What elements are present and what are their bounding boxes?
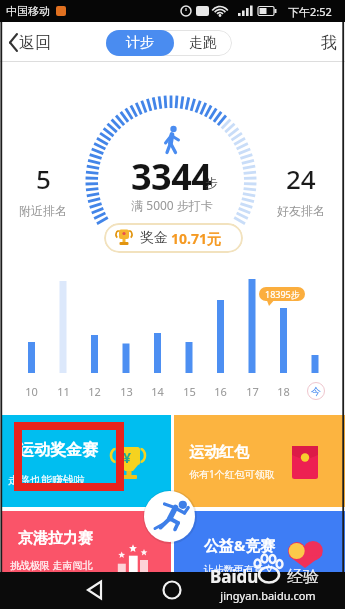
staticText: 11 <box>57 384 70 399</box>
button[interactable] <box>144 491 195 542</box>
button[interactable]: 运动奖金赛 <box>2 415 171 507</box>
staticText: 走跑 <box>189 34 217 52</box>
button[interactable]: 计步 <box>106 30 174 56</box>
staticText: 15 <box>183 384 196 399</box>
staticText: 让步数更有意义 <box>204 563 274 576</box>
staticText: 10 <box>25 384 38 399</box>
staticText: 16 <box>214 384 227 399</box>
staticText: 挑战极限 走南闯北 <box>10 558 93 572</box>
button[interactable]: 奖金 <box>104 223 243 253</box>
staticText: 17 <box>246 384 259 399</box>
button[interactable] <box>152 576 192 604</box>
staticText: 走路也能赚钱啦 <box>8 473 85 487</box>
staticText: 10.71元 <box>171 229 221 248</box>
staticText: 步 <box>205 175 218 191</box>
staticText: 中国移动 <box>6 4 50 18</box>
staticText: jingyan.baidu.com <box>220 588 316 603</box>
button[interactable] <box>229 576 269 604</box>
staticText: 满 5000 步打卡 <box>131 197 213 213</box>
button[interactable]: 京港拉力赛 <box>2 511 171 572</box>
button[interactable]: 公益&竞赛 <box>174 511 345 572</box>
button[interactable]: 返回 <box>2 26 72 60</box>
staticText: 24 <box>286 161 316 196</box>
staticText: Baidu <box>210 565 259 588</box>
button[interactable]: 运动红包 <box>174 415 345 507</box>
staticText: 3344 <box>131 152 212 201</box>
staticText: 附近排名 <box>19 203 67 218</box>
staticText: 18395步 <box>265 288 300 300</box>
staticText: 12 <box>88 384 101 399</box>
staticText: 运动红包 <box>189 443 249 462</box>
staticText: 13 <box>120 384 133 399</box>
staticText: 好友排名 <box>277 203 325 218</box>
staticText: 14 <box>151 384 164 399</box>
staticText: 公益&竞赛 <box>204 535 276 555</box>
staticText: 经验 <box>287 567 319 587</box>
staticText: 下午2:52 <box>288 4 332 19</box>
button[interactable]: 今 <box>307 382 325 400</box>
staticText: 18 <box>277 384 290 399</box>
staticText: 今 <box>311 385 321 398</box>
staticText: 我 <box>321 33 337 53</box>
staticText: 京港拉力赛 <box>18 529 93 548</box>
button[interactable]: 我 <box>315 28 343 58</box>
staticText: ¥ <box>123 448 132 467</box>
staticText: 你有1个红包可领取 <box>189 467 275 481</box>
staticText: 运动奖金赛 <box>18 440 98 460</box>
button[interactable]: 走跑 <box>174 30 232 56</box>
staticText: 计步 <box>126 34 154 52</box>
staticText: 返回 <box>19 33 51 53</box>
staticText: 5 <box>36 161 51 196</box>
staticText: 奖金 <box>140 229 168 247</box>
button[interactable] <box>75 576 115 604</box>
